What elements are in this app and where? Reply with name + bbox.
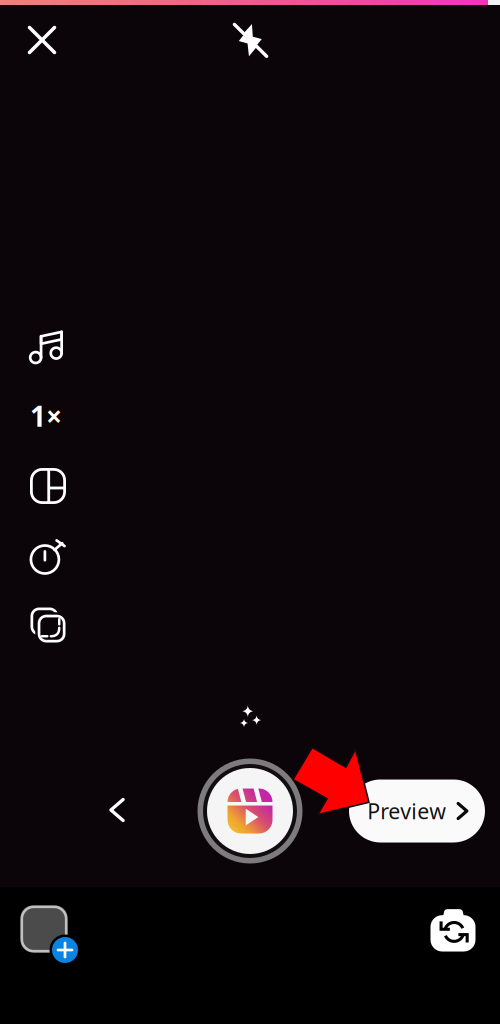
button[interactable]: Record	[196, 757, 303, 864]
button[interactable]: Flip camera	[422, 899, 484, 961]
button[interactable]: Playback speed	[18, 388, 74, 444]
button[interactable]: Gallery	[16, 901, 92, 977]
button[interactable]: Back	[93, 786, 141, 834]
button[interactable]: Effects	[228, 695, 272, 739]
staticText: Preview	[367, 797, 446, 825]
button[interactable]: Layout	[20, 458, 76, 514]
button[interactable]: Timer	[19, 528, 75, 584]
button[interactable]: Align	[20, 597, 76, 653]
button[interactable]: Flash off	[223, 13, 277, 67]
staticText: 1×	[30, 397, 62, 435]
button[interactable]: Close	[15, 13, 69, 67]
button[interactable]: Add music	[18, 319, 74, 375]
button[interactable]: Preview	[349, 779, 485, 842]
